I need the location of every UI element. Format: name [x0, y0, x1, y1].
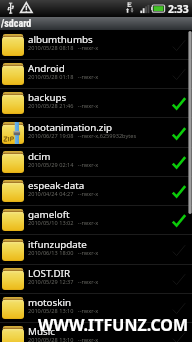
button[interactable]: espeak-data [0, 177, 192, 206]
button[interactable]: albumthumbs [0, 31, 192, 60]
staticText: 2010/06/27 19:08 --rwxr-x,6259932bytes [28, 132, 137, 140]
staticText: 2010/05/28 13:10 --rwxr-x [28, 307, 99, 315]
staticText: 2010/05/29 12:37 --rwxr-x [28, 278, 99, 286]
button[interactable]: backups [0, 89, 192, 118]
staticText: 2010/06/13 18:00 --rwxr-x [28, 249, 99, 257]
button[interactable]: Music [0, 323, 192, 342]
staticText: 2:33 [168, 2, 189, 16]
staticText: motoskin [28, 296, 72, 309]
staticText: Android [28, 62, 65, 75]
button[interactable]: motoskin [0, 294, 192, 323]
staticText: 2010/05/28 08:18 --rwxr-x [28, 44, 99, 52]
staticText: espeak-data [28, 179, 85, 192]
staticText: Music [28, 325, 55, 338]
staticText: 2010/05/28 13:10 --rwxr-x [28, 336, 99, 342]
button[interactable]: gameloft [0, 206, 192, 235]
staticText: albumthumbs [28, 33, 93, 46]
button[interactable]: itfunzupdate [0, 236, 192, 265]
staticText: bootanimation.zip [28, 121, 112, 134]
button[interactable]: /sdcard [0, 17, 192, 30]
staticText: gameloft [28, 208, 70, 221]
button[interactable]: LOST.DIR [0, 265, 192, 294]
staticText: 2010/04/24 04:27 --rwxr-x [28, 190, 99, 198]
staticText: itfunzupdate [28, 238, 87, 251]
staticText: WWW.ITFUNZ.COM [38, 314, 189, 336]
staticText: backups [28, 91, 67, 104]
button[interactable]: Android [0, 60, 192, 89]
staticText: 2010/05/29 02:14 --rwxr-x [28, 161, 99, 169]
button[interactable]: bootanimation.zip [0, 119, 192, 148]
button[interactable]: dcim [0, 148, 192, 177]
staticText: 2010/05/28 01:18 --rwxr-x [28, 73, 99, 81]
staticText: /sdcard [1, 18, 32, 30]
staticText: LOST.DIR [28, 267, 71, 280]
staticText: 2010/05/10 13:02 --rwxr-x [28, 219, 99, 227]
staticText: 2010/05/28 21:46 --rwxr-x [28, 102, 99, 110]
staticText: dcim [28, 150, 51, 163]
